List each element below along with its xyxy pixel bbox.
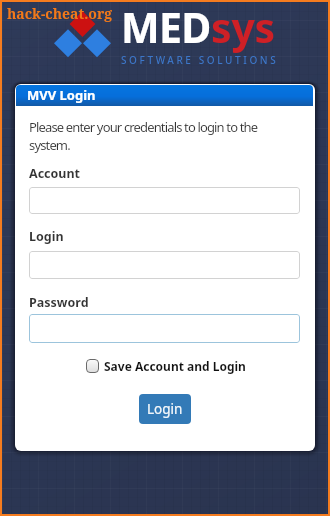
staticText: sys bbox=[211, 0, 275, 55]
button[interactable]: Save Account and Login bbox=[86, 358, 246, 374]
staticText: Login bbox=[29, 228, 64, 245]
button[interactable] bbox=[29, 314, 300, 343]
staticText: Please enter your credentials to login t… bbox=[29, 118, 269, 154]
staticText: Login bbox=[147, 400, 183, 418]
button[interactable]: Login bbox=[139, 394, 191, 424]
button[interactable] bbox=[29, 187, 300, 214]
staticText: MVV Login bbox=[27, 86, 96, 104]
staticText: Account bbox=[29, 165, 81, 182]
staticText: Password bbox=[29, 294, 89, 311]
staticText: Save Account and Login bbox=[104, 358, 246, 374]
staticText: MED bbox=[121, 0, 211, 55]
button[interactable]: MVV Login bbox=[16, 85, 313, 106]
button[interactable] bbox=[29, 251, 300, 279]
staticText: hack-cheat.org bbox=[7, 4, 113, 23]
staticText: SOFTWARE SOLUTIONS bbox=[121, 53, 279, 67]
